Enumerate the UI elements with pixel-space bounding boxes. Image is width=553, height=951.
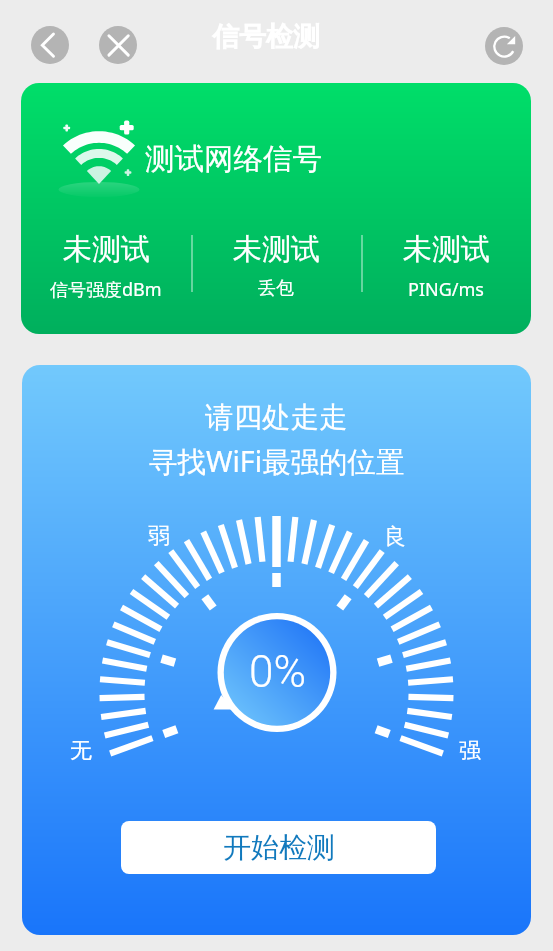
staticText: 开始检测: [223, 830, 335, 865]
staticText: 寻找WiFi最强的位置: [149, 442, 405, 481]
staticText: 未测试: [403, 231, 490, 268]
staticText: 无: [70, 737, 92, 765]
button[interactable]: Back: [31, 26, 69, 64]
staticText: 未测试: [63, 231, 150, 268]
button[interactable]: Close: [99, 26, 137, 64]
staticText: 信号强度dBm: [50, 277, 162, 302]
staticText: 未测试: [233, 231, 320, 268]
button[interactable]: Refresh: [485, 27, 523, 65]
staticText: 良: [384, 523, 406, 551]
staticText: 丢包: [258, 277, 294, 300]
staticText: 请四处走走: [205, 400, 348, 436]
staticText: 强: [459, 737, 481, 765]
button[interactable]: 开始检测: [121, 821, 436, 874]
staticText: 0%: [249, 646, 306, 698]
staticText: PING/ms: [408, 277, 484, 302]
staticText: 信号检测: [212, 20, 320, 54]
staticText: 测试网络信号: [145, 141, 322, 178]
staticText: 弱: [148, 522, 170, 550]
